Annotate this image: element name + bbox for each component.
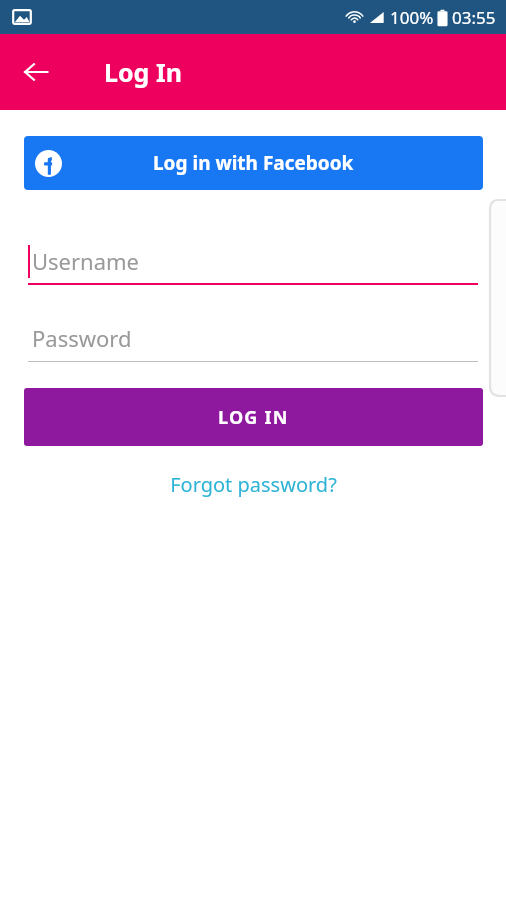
button[interactable]: Log in with Facebook: [24, 136, 483, 190]
staticText: 03:55: [452, 6, 496, 29]
staticText: LOG IN: [218, 405, 289, 430]
button[interactable]: Username: [28, 237, 478, 285]
staticText: Log in with Facebook: [153, 150, 354, 176]
button[interactable]: Back: [12, 48, 60, 96]
staticText: 100%: [390, 6, 434, 29]
button[interactable]: LOG IN: [24, 388, 483, 446]
staticText: Forgot password?: [170, 471, 337, 498]
staticText: Password: [32, 323, 132, 353]
button[interactable]: Password: [28, 314, 478, 362]
staticText: Log In: [104, 55, 182, 89]
button[interactable]: Forgot password?: [160, 465, 347, 504]
staticText: Username: [32, 246, 140, 276]
